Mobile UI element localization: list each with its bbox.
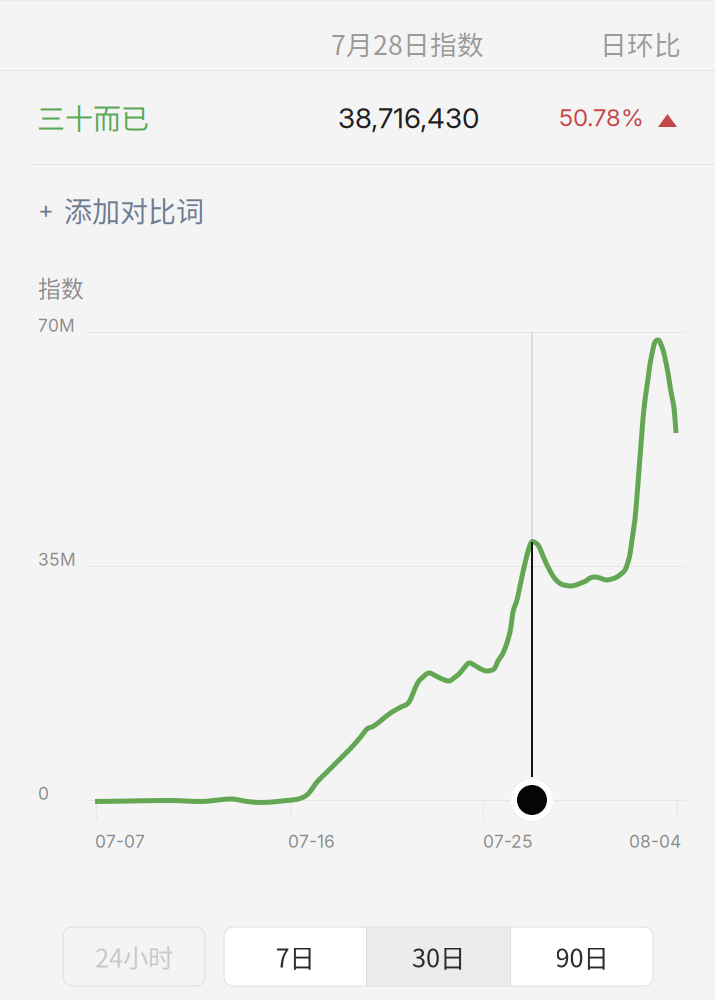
staticText: 07-16 (288, 831, 335, 852)
staticText: 0 (38, 783, 49, 804)
button[interactable]: 30日 (367, 927, 510, 986)
button[interactable]: 90日 (511, 927, 653, 986)
staticText: 50.78% (559, 103, 644, 132)
button[interactable]: 7日 (224, 927, 366, 986)
staticText: 90日 (555, 938, 608, 975)
staticText: 70M (38, 315, 75, 336)
staticText: 24小时 (95, 938, 173, 975)
staticText: 7月28日指数 (331, 24, 484, 63)
staticText: 07-25 (483, 831, 533, 852)
staticText: 指数 (38, 271, 84, 304)
staticText: 添加对比词 (64, 190, 204, 230)
staticText: + (38, 195, 54, 224)
staticText: 38,716,430 (338, 101, 479, 135)
staticText: 35M (38, 549, 76, 570)
button[interactable]: 24小时 (63, 927, 205, 986)
button[interactable]: + (38, 184, 270, 236)
staticText: 30日 (412, 938, 465, 975)
staticText: 日环比 (600, 24, 681, 63)
staticText: 07-07 (95, 831, 145, 852)
staticText: 7日 (275, 938, 314, 975)
staticText: 08-04 (629, 831, 681, 852)
staticText: 三十而已 (37, 97, 149, 137)
